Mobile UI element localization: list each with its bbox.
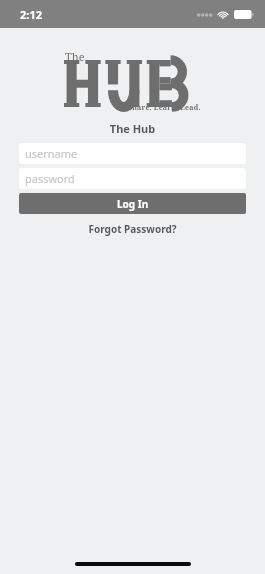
staticText: 2:12 [20, 7, 42, 22]
button[interactable]: password [19, 168, 246, 189]
button[interactable]: Log In [19, 193, 246, 214]
staticText: Log In [117, 197, 149, 211]
staticText: Share. Learn. Lead. [128, 103, 201, 113]
staticText: The [65, 49, 85, 64]
staticText: Forgot Password? [88, 222, 177, 236]
staticText: password [25, 171, 75, 186]
button[interactable]: username [19, 143, 246, 164]
button[interactable]: Forgot Password? [0, 222, 265, 236]
staticText: username [25, 146, 78, 161]
staticText: The Hub [0, 121, 265, 136]
